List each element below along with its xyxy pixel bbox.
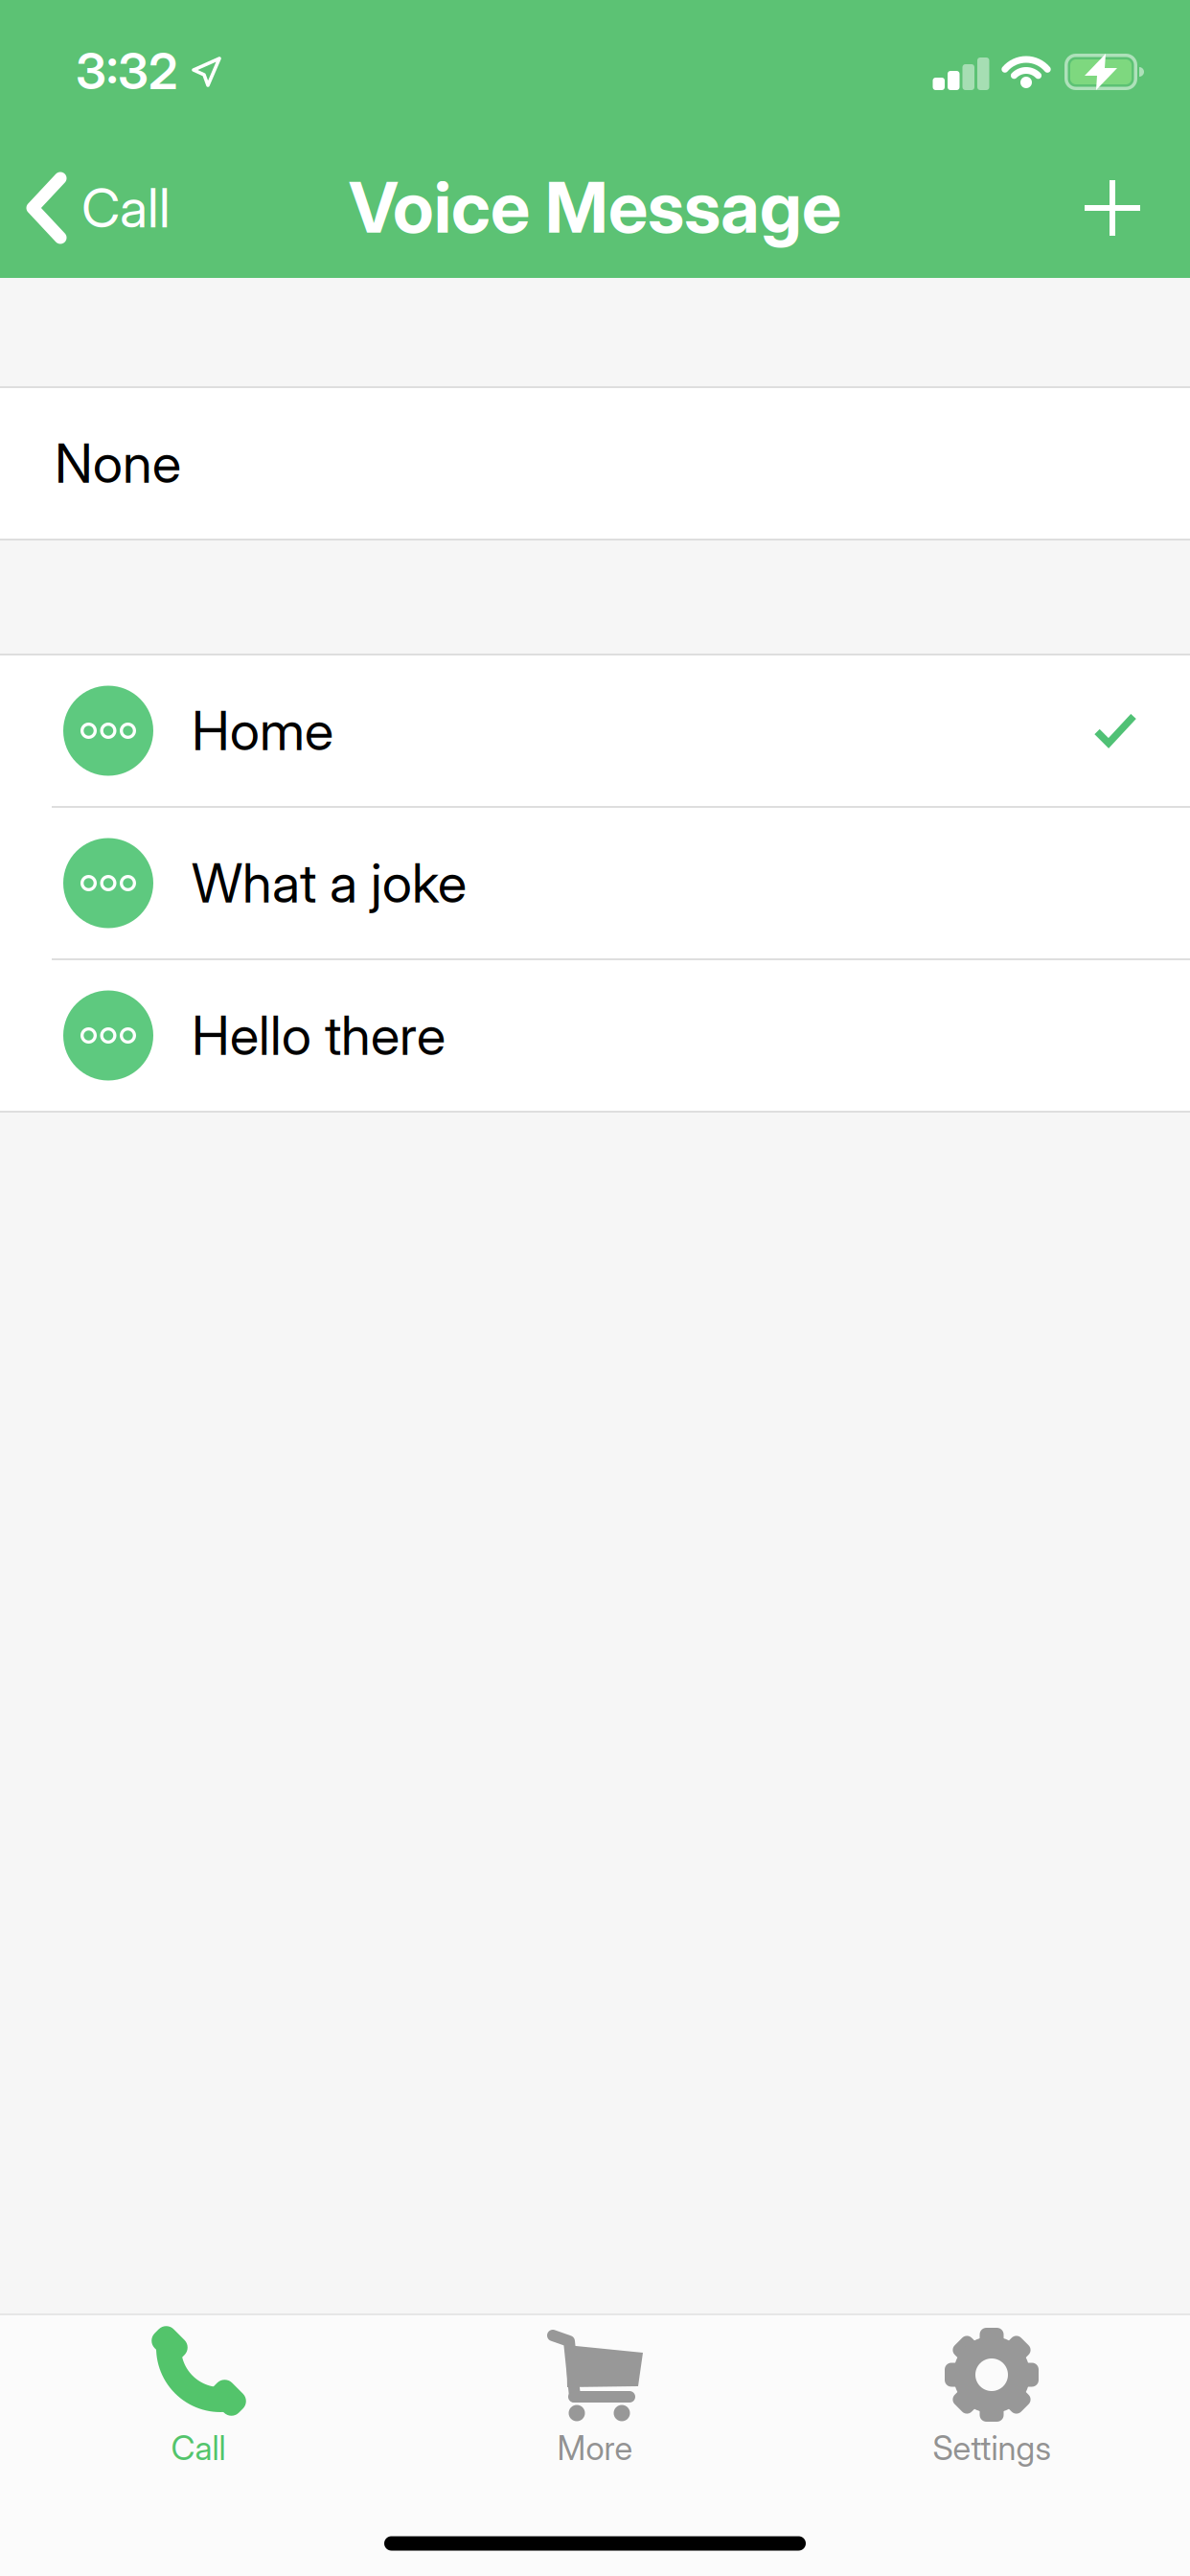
button[interactable]: Hello there [0,960,1190,1111]
button[interactable]: None [0,388,1190,539]
staticText: Settings [933,2428,1051,2468]
button[interactable]: More [397,2315,793,2555]
staticText: What a joke [192,851,467,915]
staticText: 3:32 [76,41,177,100]
button[interactable]: Add [1085,180,1140,236]
staticText: Call [171,2428,226,2468]
button[interactable]: What a joke [0,808,1190,958]
button[interactable]: Call [0,2315,397,2555]
staticText: More [557,2428,633,2468]
staticText: Call [81,176,171,240]
staticText: Hello there [192,1004,446,1067]
staticText: Voice Message [349,166,841,248]
staticText: None [55,432,181,495]
button[interactable]: Settings [793,2315,1190,2555]
button[interactable]: Call [27,174,171,241]
button[interactable]: Home [0,655,1190,806]
staticText: Home [192,699,333,762]
